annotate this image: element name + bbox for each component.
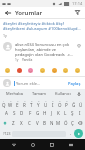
- button[interactable]: S: [10, 108, 18, 118]
- staticText: V: [36, 120, 39, 126]
- button[interactable]: Z: [9, 118, 17, 128]
- button[interactable]: 9: [56, 98, 63, 108]
- button[interactable]: D: [18, 108, 26, 118]
- staticText: 3: [17, 99, 19, 102]
- staticText: alise.n034 Sonuncusu en çok hoşlanılan, …: [15, 42, 73, 57]
- staticText: Merhaba: [6, 91, 23, 96]
- button[interactable]: 0: [63, 98, 70, 108]
- staticText: A: [5, 110, 8, 116]
- button[interactable]: wow: [51, 67, 58, 74]
- staticText: L: [64, 110, 67, 116]
- button[interactable]: 5: [28, 98, 35, 108]
- button[interactable]: N: [48, 118, 55, 128]
- button[interactable]: C: [25, 118, 33, 128]
- staticText: 2: [10, 99, 12, 102]
- staticText: I: [79, 110, 81, 116]
- staticText: B: [43, 120, 46, 126]
- button[interactable]: Home: [28, 140, 38, 150]
- staticText: Ş: [71, 110, 74, 116]
- button[interactable]: 2: [7, 98, 14, 108]
- staticText: P: [65, 102, 68, 108]
- staticText: Yorum ekle...: [16, 81, 41, 86]
- button[interactable]: M: [55, 118, 62, 128]
- button[interactable]: 6: [35, 98, 42, 108]
- staticText: Kullanıcı: [55, 91, 71, 96]
- staticText: D: [20, 110, 24, 116]
- button[interactable]: A: [2, 108, 10, 118]
- staticText: Tamam: [32, 91, 46, 96]
- staticText: Z: [12, 120, 15, 126]
- button[interactable]: Yorum ekle...: [14, 81, 67, 86]
- button[interactable]: V: [33, 118, 41, 128]
- button[interactable]: Ş: [69, 108, 76, 118]
- button[interactable]: Paylaş: [67, 80, 82, 87]
- button[interactable]: L: [62, 108, 69, 118]
- button[interactable]: F: [26, 108, 34, 118]
- button[interactable]: H: [41, 108, 48, 118]
- button[interactable]: G: [34, 108, 41, 118]
- button[interactable]: 3: [14, 98, 21, 108]
- button[interactable]: ?123: [2, 129, 11, 138]
- button[interactable]: Ö: [62, 118, 69, 128]
- button[interactable]: I: [76, 108, 83, 118]
- button[interactable]: X: [17, 118, 25, 128]
- button[interactable]: Ç: [69, 118, 76, 128]
- staticText: Paylaş: [68, 81, 81, 86]
- staticText: C: [28, 120, 31, 126]
- staticText: X: [20, 120, 23, 126]
- button[interactable]: 4: [21, 98, 28, 108]
- button[interactable]: .: [67, 129, 74, 138]
- button[interactable]: Back: [9, 140, 19, 150]
- staticText: H: [43, 110, 47, 116]
- staticText: E: [16, 102, 19, 108]
- staticText: 1: [3, 99, 5, 102]
- button[interactable]: B: [41, 118, 48, 128]
- staticText: 5: [31, 99, 33, 102]
- button[interactable]: Backspace: [76, 118, 84, 128]
- staticText: 4: [24, 99, 26, 102]
- staticText: 0: [66, 99, 68, 102]
- button[interactable]: alise.n034 Sonuncusu en çok hoşlanılan, …: [0, 40, 85, 64]
- button[interactable]: Keyboard indicator: [66, 140, 76, 150]
- button[interactable]: Send: [74, 129, 83, 138]
- staticText: Ö: [64, 120, 68, 126]
- button[interactable]: 1: [1, 98, 7, 108]
- staticText: 7: [45, 99, 47, 102]
- staticText: 17:14: [72, 1, 83, 6]
- button[interactable]: heart: [27, 67, 34, 74]
- button[interactable]: Kullanıcı: [51, 89, 75, 98]
- button[interactable]: Tamam: [27, 89, 51, 98]
- button[interactable]: Shift: [1, 118, 9, 128]
- staticText: R: [23, 102, 26, 108]
- button[interactable]: K: [55, 108, 62, 118]
- button[interactable]: Filter: [73, 8, 82, 17]
- button[interactable]: Recents: [47, 140, 57, 150]
- button[interactable]: Merhaba: [2, 89, 27, 98]
- button[interactable]: Ğ: [70, 98, 77, 108]
- staticText: Y: [37, 102, 40, 108]
- button[interactable]: Back: [3, 8, 12, 17]
- button[interactable]: Voice input: [75, 89, 83, 98]
- staticText: Ç: [71, 120, 74, 126]
- button[interactable]: joy: [39, 67, 46, 74]
- staticText: G: [36, 110, 40, 116]
- staticText: Yanıtla: [22, 58, 33, 62]
- staticText: 1y: [15, 58, 19, 62]
- staticText: F: [29, 110, 32, 116]
- staticText: I: [52, 102, 54, 108]
- staticText: 6: [38, 99, 40, 102]
- button[interactable]: fire: [16, 67, 23, 74]
- button[interactable]: Like: [75, 42, 82, 49]
- button[interactable]: J: [48, 108, 55, 118]
- button[interactable]: 7: [42, 98, 49, 108]
- button[interactable]: clap: [74, 67, 81, 74]
- staticText: J: [51, 110, 53, 116]
- button[interactable]: Ü: [77, 98, 84, 108]
- staticText: K: [57, 110, 60, 116]
- button[interactable]: sad: [62, 67, 69, 74]
- button[interactable]: grin: [4, 67, 11, 74]
- staticText: W: [8, 102, 13, 108]
- staticText: ?123: [3, 131, 11, 136]
- button[interactable]: 8: [49, 98, 56, 108]
